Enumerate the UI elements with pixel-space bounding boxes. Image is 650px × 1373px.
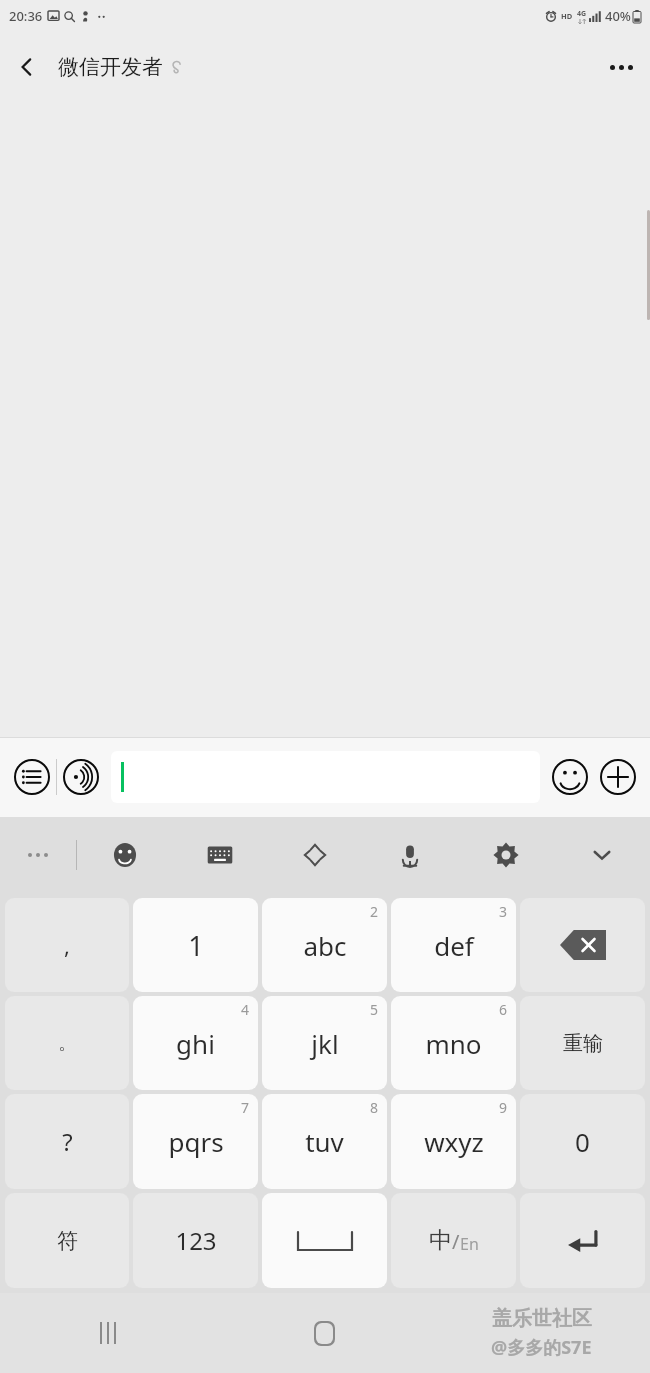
staticText: 符 bbox=[57, 1228, 78, 1254]
staticText: 中 bbox=[429, 1226, 452, 1255]
button[interactable]: Back bbox=[0, 40, 54, 94]
button[interactable]: Sticker bbox=[77, 817, 172, 893]
button[interactable]: Cursor control bbox=[267, 817, 362, 893]
button[interactable]: , bbox=[5, 898, 129, 992]
staticText: 重输 bbox=[563, 1031, 603, 1056]
button[interactable]: Hide keyboard bbox=[554, 817, 650, 893]
staticText: 1 bbox=[188, 927, 204, 964]
staticText: HD bbox=[561, 11, 573, 21]
button[interactable]: wxyz bbox=[391, 1094, 516, 1189]
staticText: 4 bbox=[241, 1000, 250, 1019]
button[interactable]: More tools bbox=[0, 817, 76, 893]
staticText: abc bbox=[303, 928, 347, 963]
button[interactable]: mno bbox=[391, 996, 516, 1090]
staticText: 0 bbox=[575, 1124, 590, 1159]
staticText: 123 bbox=[175, 1224, 217, 1257]
button[interactable]: 0 bbox=[520, 1094, 645, 1189]
staticText: ? bbox=[62, 1125, 73, 1158]
button[interactable]: Space bbox=[262, 1193, 387, 1288]
staticText: 20:36 bbox=[9, 7, 43, 25]
staticText: 4G bbox=[577, 9, 587, 19]
staticText: 7 bbox=[241, 1098, 250, 1117]
staticText: 6 bbox=[499, 1000, 508, 1019]
staticText: def bbox=[434, 928, 474, 963]
button[interactable]: ? bbox=[5, 1094, 129, 1189]
button[interactable]: Settings bbox=[458, 817, 554, 893]
button[interactable]: 。 bbox=[5, 996, 129, 1090]
staticText: 8 bbox=[370, 1098, 379, 1117]
button[interactable]: Keyboard layout bbox=[172, 817, 267, 893]
staticText: ghi bbox=[176, 1026, 215, 1061]
button[interactable]: Enter bbox=[520, 1193, 645, 1288]
button[interactable]: Home bbox=[216, 1293, 433, 1373]
button[interactable]: Voice typing bbox=[362, 817, 458, 893]
staticText: 。 bbox=[58, 1032, 76, 1055]
staticText: / bbox=[452, 1228, 460, 1255]
button[interactable]: 123 bbox=[133, 1193, 258, 1288]
button[interactable]: 1 bbox=[133, 898, 258, 992]
staticText: 盖乐世社区 bbox=[492, 1306, 592, 1331]
button[interactable]: abc bbox=[262, 898, 387, 992]
staticText: 3 bbox=[499, 902, 508, 921]
button[interactable]: Switch language bbox=[391, 1193, 516, 1288]
staticText: wxyz bbox=[424, 1124, 484, 1159]
button[interactable]: 重输 bbox=[520, 996, 645, 1090]
button[interactable]: ghi bbox=[133, 996, 258, 1090]
staticText: , bbox=[64, 930, 70, 960]
staticText: 5 bbox=[370, 1000, 379, 1019]
button[interactable]: pqrs bbox=[133, 1094, 258, 1189]
staticText: mno bbox=[425, 1026, 482, 1061]
button[interactable]: Backspace bbox=[520, 898, 645, 992]
button[interactable] bbox=[111, 751, 540, 803]
staticText: En bbox=[460, 1233, 479, 1255]
staticText: jkl bbox=[311, 1026, 339, 1061]
staticText: 40% bbox=[605, 7, 631, 25]
staticText: pqrs bbox=[168, 1124, 224, 1159]
button[interactable]: 符 bbox=[5, 1193, 129, 1288]
staticText: 微信开发者 bbox=[58, 54, 163, 80]
staticText: 9 bbox=[499, 1098, 508, 1117]
staticText: tuv bbox=[305, 1124, 344, 1159]
button[interactable]: Voice input bbox=[57, 753, 105, 801]
staticText: @多多的S7E bbox=[491, 1335, 592, 1360]
button[interactable]: jkl bbox=[262, 996, 387, 1090]
button[interactable]: def bbox=[391, 898, 516, 992]
staticText: 2 bbox=[370, 902, 379, 921]
button[interactable]: tuv bbox=[262, 1094, 387, 1189]
button[interactable]: Emoji bbox=[546, 753, 594, 801]
button[interactable]: More bbox=[594, 753, 642, 801]
button[interactable]: Menu bbox=[8, 753, 56, 801]
button[interactable]: More options bbox=[592, 38, 650, 96]
button[interactable]: Recent apps bbox=[0, 1293, 216, 1373]
